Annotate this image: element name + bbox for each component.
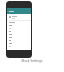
staticText: Mock Settings — [21, 59, 43, 63]
button[interactable] — [7, 15, 31, 19]
button[interactable] — [7, 40, 31, 43]
button[interactable] — [7, 25, 31, 28]
button[interactable] — [7, 22, 31, 25]
button[interactable] — [7, 8, 31, 14]
button[interactable] — [7, 46, 31, 49]
button[interactable] — [7, 31, 31, 34]
button[interactable] — [7, 43, 31, 46]
button[interactable] — [7, 28, 31, 31]
button[interactable] — [7, 34, 31, 37]
button[interactable] — [7, 37, 31, 40]
